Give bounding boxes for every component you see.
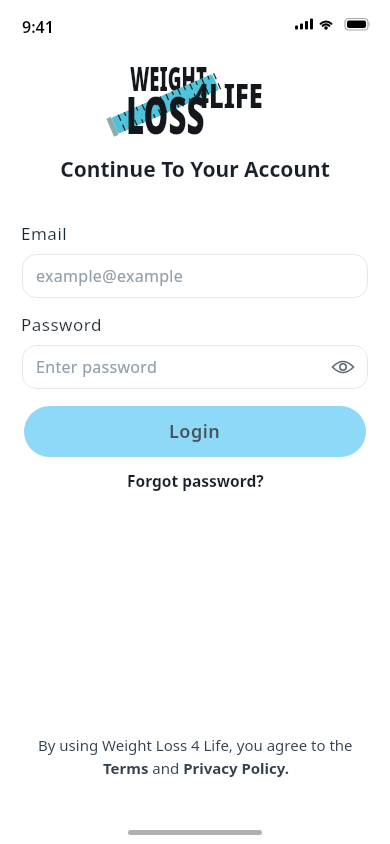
staticText: 9:41 [22, 16, 54, 38]
button[interactable]: Terms and Privacy Policy. [103, 758, 289, 778]
staticText: LOSS [126, 78, 205, 149]
staticText: WEIGHT [130, 56, 207, 101]
staticText: Password [21, 313, 102, 336]
staticText: 4LIFE [194, 72, 263, 118]
staticText: Email [21, 222, 68, 245]
staticText: By using Weight Loss 4 Life, you agree t… [38, 735, 353, 755]
button[interactable]: Forgot password? [127, 470, 264, 491]
button[interactable]: Login [24, 406, 366, 457]
staticText: example@example [36, 265, 184, 287]
button[interactable]: example@example [22, 254, 368, 298]
staticText: Enter password [36, 356, 158, 378]
button[interactable]: Enter password [22, 345, 368, 389]
button[interactable] [330, 354, 356, 380]
staticText: Login [169, 419, 221, 444]
staticText: Continue To Your Account [0, 155, 390, 184]
